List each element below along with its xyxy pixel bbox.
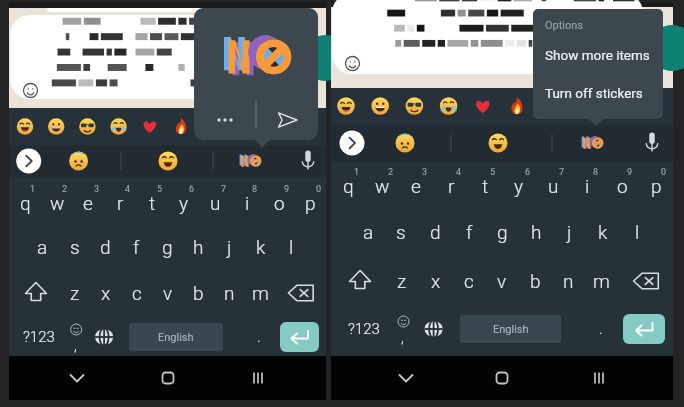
button[interactable]: x xyxy=(419,259,452,303)
button[interactable]: o xyxy=(605,164,639,208)
button[interactable]: p xyxy=(639,164,673,208)
button[interactable]: Change language xyxy=(94,320,114,354)
button[interactable]: g xyxy=(485,210,519,254)
button[interactable]: Emoji 2 xyxy=(368,88,392,124)
button[interactable]: Message field xyxy=(332,0,643,74)
button[interactable]: Comma xyxy=(65,320,85,354)
button[interactable]: x xyxy=(90,271,121,315)
button[interactable]: c xyxy=(452,259,485,303)
button[interactable]: Sticker 1 xyxy=(61,145,97,177)
button[interactable]: u xyxy=(199,181,231,225)
button[interactable]: Send xyxy=(302,35,348,81)
button[interactable]: t xyxy=(136,181,168,225)
button[interactable]: s xyxy=(384,210,418,254)
button[interactable]: Emoji 5 xyxy=(471,88,495,124)
button[interactable]: Expand suggestions xyxy=(338,124,366,162)
button[interactable]: ?123 xyxy=(16,318,62,356)
button[interactable]: t xyxy=(468,164,502,208)
button[interactable]: b xyxy=(519,259,552,303)
button[interactable]: q xyxy=(331,164,365,208)
button[interactable]: d xyxy=(90,225,121,269)
button[interactable]: Emoji 5 xyxy=(139,108,161,145)
button[interactable]: Comma xyxy=(392,312,413,346)
button[interactable]: v xyxy=(152,271,183,315)
button[interactable]: Emoji 4 xyxy=(107,108,129,145)
button[interactable]: w xyxy=(365,164,399,208)
button[interactable]: s xyxy=(59,225,90,269)
button[interactable]: English xyxy=(460,315,561,343)
button[interactable]: o xyxy=(263,181,295,225)
button[interactable]: p xyxy=(294,181,326,225)
button[interactable]: ?123 xyxy=(339,310,389,348)
button[interactable]: y xyxy=(168,181,200,225)
button[interactable]: More options xyxy=(194,100,256,140)
button[interactable]: Emoji 2 xyxy=(45,108,67,145)
button[interactable]: u xyxy=(536,164,570,208)
button[interactable]: e xyxy=(72,181,104,225)
button[interactable]: Show more items xyxy=(545,40,663,70)
button[interactable]: Sticker NO xyxy=(230,145,270,177)
button[interactable]: i xyxy=(570,164,604,208)
button[interactable]: v xyxy=(485,259,518,303)
button[interactable]: Emoji 1 xyxy=(334,88,358,124)
button[interactable]: h xyxy=(519,210,553,254)
button[interactable]: g xyxy=(152,225,183,269)
button[interactable]: Home xyxy=(146,356,190,400)
button[interactable]: . xyxy=(249,320,269,354)
button[interactable]: l xyxy=(620,210,654,254)
button[interactable]: Emoji 3 xyxy=(403,88,427,124)
button[interactable]: r xyxy=(434,164,468,208)
button[interactable]: Back xyxy=(384,356,428,400)
button[interactable]: m xyxy=(585,259,618,303)
button[interactable]: Emoji xyxy=(22,82,39,99)
button[interactable]: Emoji 6 xyxy=(170,108,192,145)
button[interactable]: a xyxy=(27,225,58,269)
button[interactable]: Emoji 3 xyxy=(76,108,98,145)
button[interactable]: n xyxy=(552,259,585,303)
button[interactable]: k xyxy=(586,210,620,254)
button[interactable]: Enter xyxy=(623,314,665,344)
button[interactable]: z xyxy=(385,259,418,303)
button[interactable]: Emoji 4 xyxy=(437,88,461,124)
button[interactable]: a xyxy=(351,210,385,254)
button[interactable]: Message field xyxy=(10,15,296,99)
button[interactable]: Recents xyxy=(236,356,280,400)
button[interactable]: l xyxy=(276,225,307,269)
button[interactable]: Sticker 2 xyxy=(480,124,516,162)
button[interactable]: Send xyxy=(649,25,684,71)
button[interactable]: j xyxy=(214,225,245,269)
button[interactable]: . xyxy=(590,312,611,346)
button[interactable]: f xyxy=(452,210,486,254)
button[interactable]: Recents xyxy=(577,356,621,400)
button[interactable]: Turn off stickers xyxy=(545,78,663,108)
button[interactable]: f xyxy=(121,225,152,269)
button[interactable]: Emoji 1 xyxy=(14,108,36,145)
button[interactable]: Emoji 6 xyxy=(505,88,529,124)
button[interactable]: Back xyxy=(55,356,99,400)
button[interactable]: d xyxy=(418,210,452,254)
button[interactable]: Send sticker xyxy=(256,100,318,140)
button[interactable]: Home xyxy=(480,356,524,400)
button[interactable]: Sticker 1 xyxy=(387,124,423,162)
button[interactable]: e xyxy=(399,164,433,208)
button[interactable]: y xyxy=(502,164,536,208)
button[interactable]: j xyxy=(552,210,586,254)
button[interactable]: n xyxy=(214,271,245,315)
button[interactable]: Expand suggestions xyxy=(15,145,43,177)
button[interactable]: r xyxy=(104,181,136,225)
button[interactable]: k xyxy=(245,225,276,269)
button[interactable]: q xyxy=(9,181,41,225)
button[interactable]: b xyxy=(183,271,214,315)
button[interactable]: Enter xyxy=(280,322,319,352)
button[interactable]: Sticker 2 xyxy=(150,145,186,177)
button[interactable]: z xyxy=(59,271,90,315)
button[interactable]: m xyxy=(245,271,276,315)
button[interactable]: h xyxy=(183,225,214,269)
button[interactable]: English xyxy=(129,323,223,351)
button[interactable]: i xyxy=(231,181,263,225)
button[interactable]: Sticker NO xyxy=(572,124,612,162)
button[interactable]: Change language xyxy=(423,312,444,346)
button[interactable]: Emoji xyxy=(344,55,361,72)
button[interactable]: Voice input xyxy=(636,124,668,162)
button[interactable]: c xyxy=(121,271,152,315)
